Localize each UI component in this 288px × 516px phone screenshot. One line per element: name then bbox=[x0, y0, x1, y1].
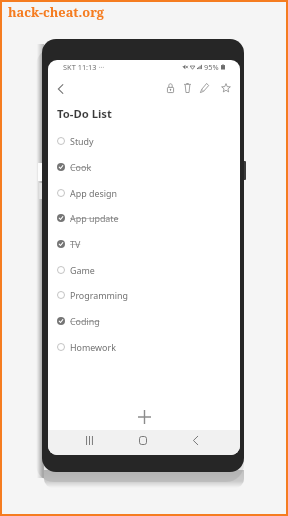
button[interactable]: Programming bbox=[48, 282, 240, 308]
button[interactable]: Game bbox=[48, 257, 240, 283]
staticText: Coding bbox=[70, 315, 100, 327]
button[interactable]: Coding bbox=[48, 308, 240, 334]
button[interactable]: Cook bbox=[48, 154, 240, 180]
button[interactable]: Homework bbox=[48, 334, 240, 360]
button[interactable]: Edit bbox=[196, 80, 212, 96]
staticText: SKT 11:13 bbox=[63, 62, 97, 72]
button[interactable]: Back bbox=[51, 80, 69, 98]
staticText: To-Do List bbox=[57, 106, 112, 121]
button[interactable]: Favorite bbox=[218, 80, 234, 96]
staticText: 95% bbox=[204, 62, 219, 72]
button[interactable]: App design bbox=[48, 180, 240, 206]
staticText: App update bbox=[70, 212, 119, 224]
button[interactable]: Add task bbox=[132, 405, 156, 429]
staticText: Programming bbox=[70, 289, 129, 301]
staticText: Game bbox=[70, 264, 95, 276]
button[interactable]: Back bbox=[184, 429, 206, 452]
staticText: Homework bbox=[70, 341, 116, 353]
button[interactable]: Recents bbox=[78, 429, 100, 452]
staticText: Cook bbox=[70, 161, 92, 173]
button[interactable]: Lock bbox=[162, 80, 178, 96]
button[interactable]: TV bbox=[48, 231, 240, 257]
staticText: hack-cheat.org bbox=[8, 3, 105, 20]
button[interactable]: Study bbox=[48, 128, 240, 154]
button[interactable]: Delete bbox=[179, 80, 195, 96]
button[interactable]: Home bbox=[132, 429, 154, 452]
button[interactable]: App update bbox=[48, 205, 240, 231]
staticText: TV bbox=[70, 238, 81, 250]
staticText: Study bbox=[70, 135, 94, 147]
staticText: App design bbox=[70, 187, 117, 199]
